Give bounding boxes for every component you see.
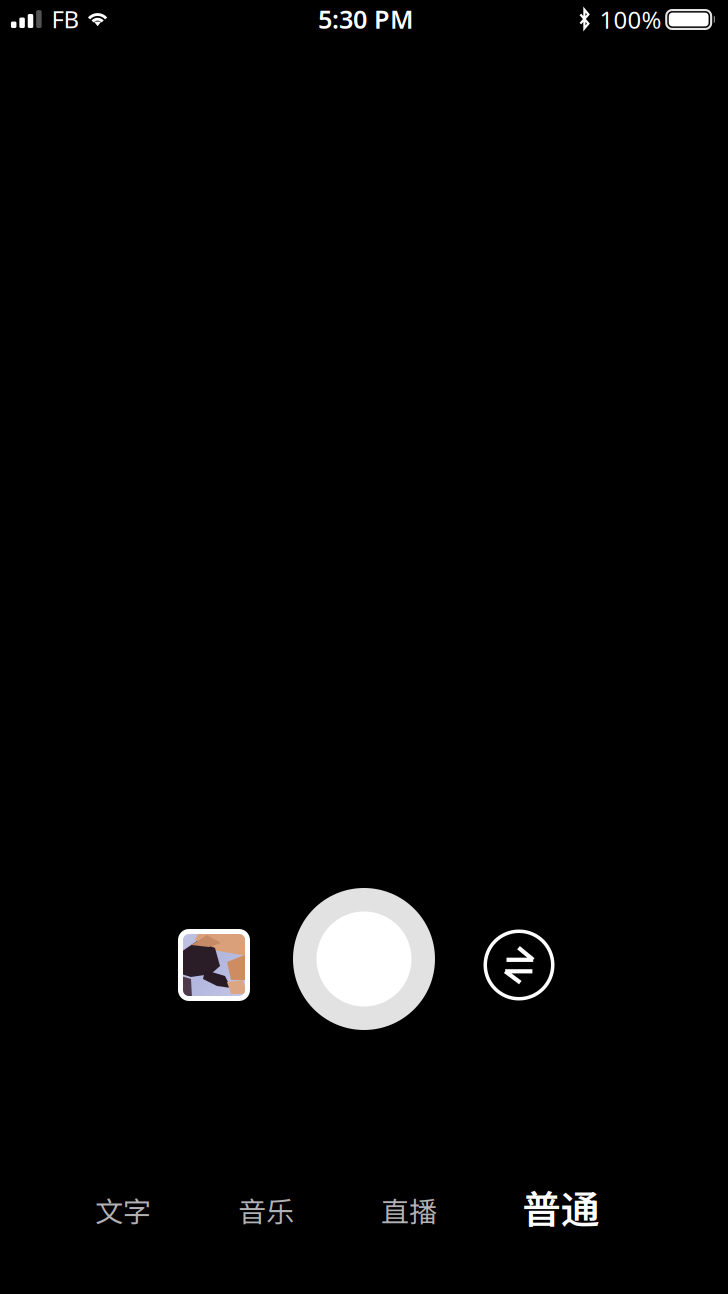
button[interactable]: 普通 bbox=[509, 1171, 613, 1243]
staticText: FB bbox=[52, 3, 80, 35]
button[interactable]: 音乐 bbox=[218, 1174, 314, 1246]
staticText: 音乐 bbox=[238, 1190, 294, 1230]
button[interactable]: 文字 bbox=[75, 1174, 171, 1246]
staticText: 直播 bbox=[381, 1190, 437, 1230]
button[interactable]: 直播 bbox=[361, 1174, 457, 1246]
button[interactable]: Camera roll bbox=[178, 929, 250, 1001]
staticText: 文字 bbox=[95, 1190, 151, 1230]
button[interactable]: Switch camera bbox=[482, 928, 556, 1002]
staticText: 普通 bbox=[522, 1179, 600, 1235]
staticText: 5:30 PM bbox=[318, 2, 414, 36]
staticText: 100% bbox=[599, 4, 661, 35]
button[interactable]: Take photo bbox=[293, 888, 435, 1030]
